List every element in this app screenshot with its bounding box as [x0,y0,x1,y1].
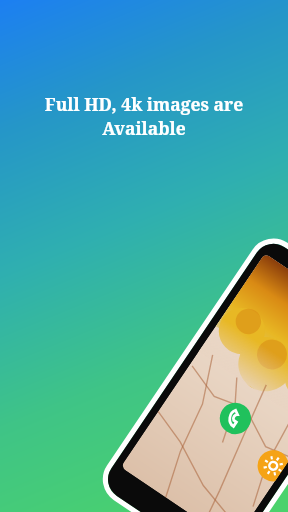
button[interactable]: Full HD, 4k images are Available [6,92,282,140]
other: Phone preview showing a full HD wallpape… [0,0,288,512]
